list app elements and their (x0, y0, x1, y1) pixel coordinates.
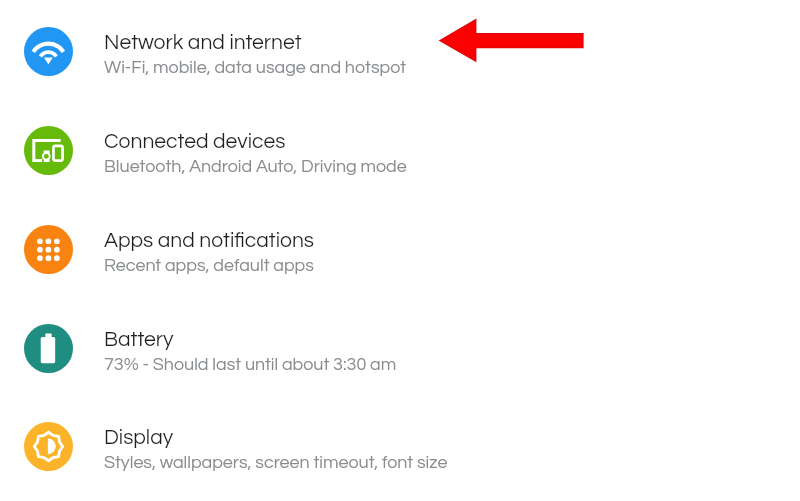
other: Battery (24, 324, 73, 373)
staticText: Bluetooth, Android Auto, Driving mode (104, 157, 407, 175)
staticText: Apps and notifications (104, 230, 314, 252)
staticText: 73% - Should last until about 3:30 am (104, 355, 397, 373)
button[interactable]: Apps and notifications (0, 200, 800, 299)
button[interactable]: Display (0, 397, 800, 496)
staticText: Connected devices (104, 131, 286, 153)
other: Display (24, 422, 73, 471)
staticText: Styles, wallpapers, screen timeout, font… (104, 453, 448, 471)
other: Apps and notifications (24, 225, 73, 274)
button[interactable]: Battery (0, 299, 800, 398)
other: Network and internet (24, 27, 73, 76)
other: Connected devices (24, 126, 73, 175)
staticText: Wi-Fi, mobile, data usage and hotspot (104, 58, 407, 76)
staticText: Network and internet (104, 32, 302, 54)
button[interactable]: Network and internet (0, 2, 800, 101)
button[interactable]: Connected devices (0, 101, 800, 200)
staticText: Battery (104, 329, 174, 351)
staticText: Recent apps, default apps (104, 256, 314, 274)
staticText: Display (104, 427, 174, 449)
